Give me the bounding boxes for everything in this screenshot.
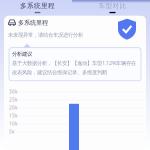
staticText: 未发现异常，请结合车况进行分析 (8, 32, 83, 38)
staticText: 分析建议 (12, 51, 32, 57)
staticText: 基于大数据分析，【长安】【逸动】车型1.12%车辆存在改表风险，建议结合维保记录… (12, 59, 136, 76)
staticText: 10k (9, 121, 17, 127)
staticText: 5k (9, 129, 14, 135)
button[interactable]: 多系统里程 (0, 1, 75, 13)
staticText: 30k (9, 89, 17, 95)
staticText: 20k (9, 105, 17, 111)
staticText: 多系统里程 (20, 1, 55, 10)
button[interactable]: 车型对比 (75, 1, 150, 13)
staticText: 车型对比 (98, 1, 126, 10)
staticText: 15k (9, 113, 17, 119)
staticText: 多系统里程 (18, 19, 48, 26)
staticText: 25k (9, 97, 17, 103)
